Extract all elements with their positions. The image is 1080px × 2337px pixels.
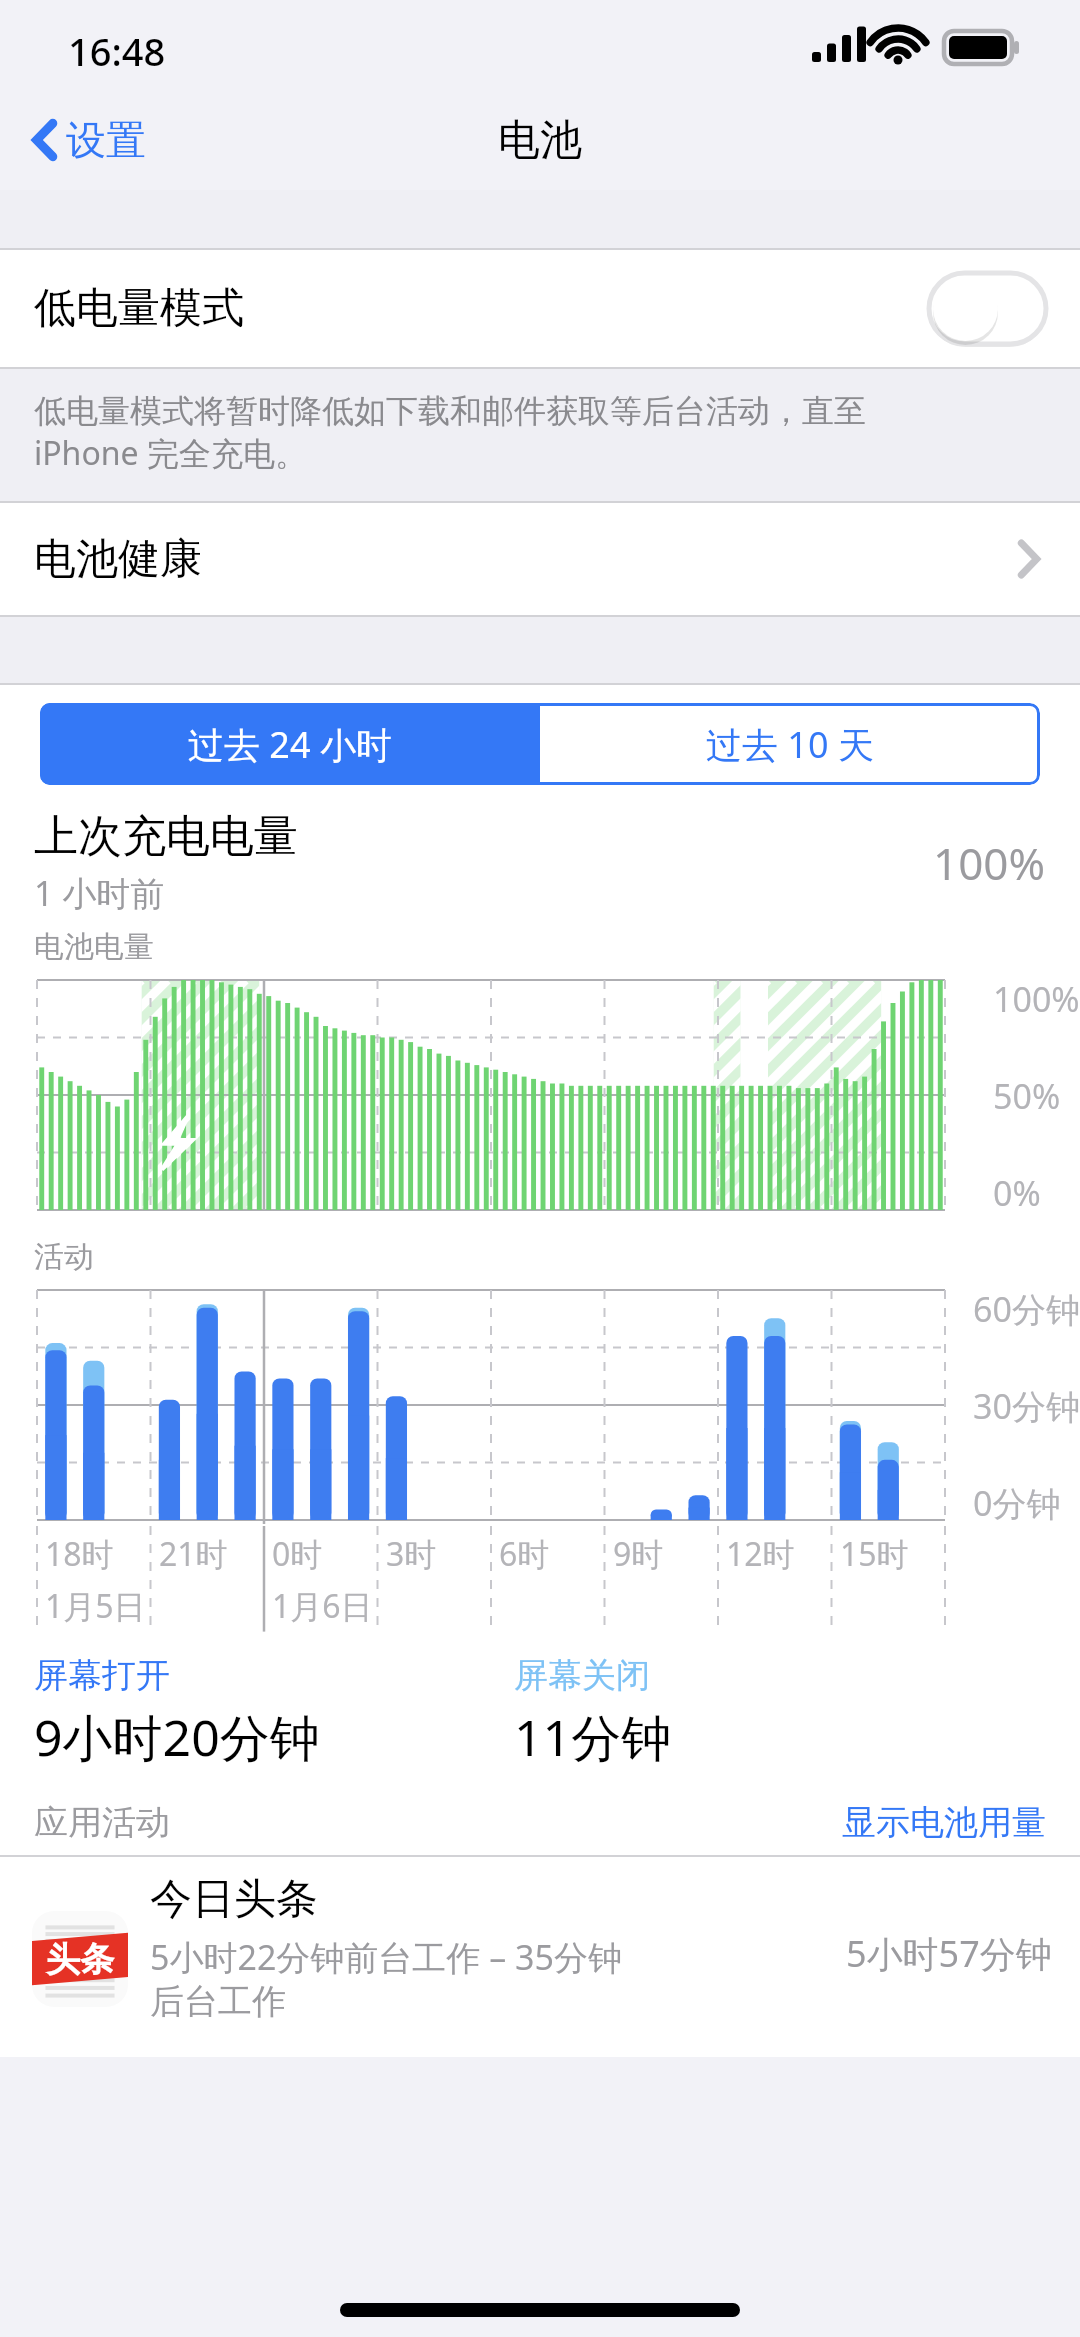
button[interactable]: 设置 bbox=[22, 109, 156, 171]
staticText: 应用活动 bbox=[34, 1801, 170, 1844]
staticText: 50% bbox=[993, 1073, 1061, 1119]
staticText: 6时 bbox=[499, 1532, 550, 1576]
staticText: 18时 bbox=[45, 1532, 114, 1576]
staticText: 头条 bbox=[46, 1938, 114, 1981]
staticText: 9时 bbox=[613, 1532, 664, 1576]
button[interactable]: 过去 10 天 bbox=[540, 703, 1040, 785]
staticText: 1 小时前 bbox=[34, 870, 165, 916]
staticText: 1月5日 bbox=[45, 1584, 146, 1628]
staticText: 屏幕关闭 bbox=[514, 1654, 650, 1697]
button[interactable]: 低电量模式 bbox=[0, 250, 1080, 367]
staticText: 低电量模式 bbox=[34, 282, 244, 335]
staticText: 屏幕打开 bbox=[34, 1654, 170, 1697]
staticText: 100% bbox=[993, 976, 1080, 1022]
staticText: 设置 bbox=[66, 115, 146, 165]
staticText: 9小时20分钟 bbox=[34, 1703, 320, 1771]
staticText: iPhone 完全充电。 bbox=[34, 431, 307, 475]
staticText: 活动 bbox=[34, 1238, 94, 1276]
staticText: 3时 bbox=[386, 1532, 437, 1576]
staticText: 100% bbox=[933, 833, 1046, 893]
staticText: 后台工作 bbox=[150, 1980, 286, 2023]
staticText: 上次充电电量 bbox=[34, 809, 298, 864]
staticText: 5小时22分钟前台工作 – 35分钟 bbox=[150, 1934, 622, 1980]
staticText: 0% bbox=[993, 1170, 1041, 1216]
staticText: 15时 bbox=[840, 1532, 909, 1576]
button[interactable]: 显示电池用量 bbox=[842, 1801, 1046, 1844]
staticText: 过去 24 小时 bbox=[188, 720, 392, 769]
staticText: 12时 bbox=[726, 1532, 795, 1576]
staticText: 低电量模式将暂时降低如下载和邮件获取等后台活动，直至 bbox=[34, 391, 866, 431]
staticText: 16:48 bbox=[68, 25, 166, 77]
staticText: 显示电池用量 bbox=[842, 1801, 1046, 1844]
staticText: 0分钟 bbox=[973, 1480, 1061, 1526]
staticText: 电池健康 bbox=[34, 533, 202, 586]
staticText: 电池电量 bbox=[34, 928, 154, 966]
staticText: 电池 bbox=[498, 114, 582, 167]
button[interactable]: 低电量模式开关 bbox=[929, 273, 1046, 344]
staticText: 5小时57分钟 bbox=[846, 1929, 1052, 1978]
button[interactable]: 头条 bbox=[0, 1857, 1080, 2057]
staticText: 11分钟 bbox=[514, 1703, 672, 1771]
staticText: 0时 bbox=[272, 1532, 323, 1576]
staticText: 30分钟 bbox=[973, 1383, 1080, 1429]
staticText: 1月6日 bbox=[272, 1584, 373, 1628]
staticText: 21时 bbox=[159, 1532, 228, 1576]
staticText: 60分钟 bbox=[973, 1286, 1080, 1332]
staticText: 今日头条 bbox=[150, 1873, 318, 1926]
button[interactable]: 过去 24 小时 bbox=[40, 703, 540, 785]
staticText: 过去 10 天 bbox=[706, 720, 874, 769]
button[interactable]: 电池健康 bbox=[0, 503, 1080, 615]
